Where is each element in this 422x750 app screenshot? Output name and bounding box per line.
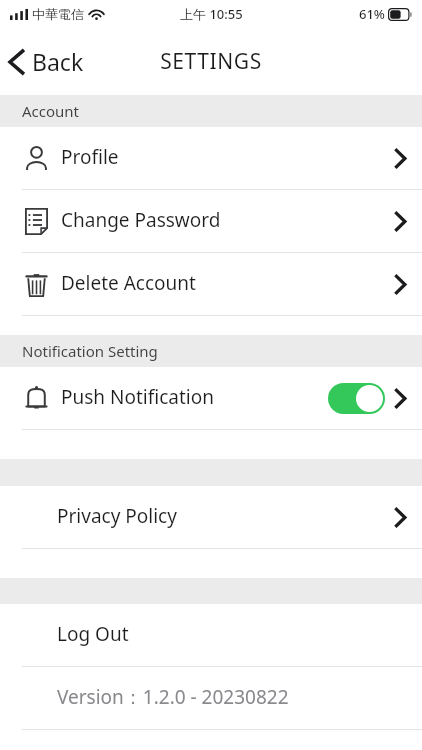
button[interactable]: Change Password xyxy=(0,190,422,252)
staticText: Log Out xyxy=(57,621,129,647)
staticText: Delete Account xyxy=(61,270,196,296)
staticText: Privacy Policy xyxy=(57,503,177,529)
button[interactable]: Back xyxy=(0,40,94,83)
staticText: 上午 10:55 xyxy=(180,5,243,23)
button[interactable]: Delete Account xyxy=(0,253,422,315)
staticText: SETTINGS xyxy=(160,47,262,76)
staticText: Notification Setting xyxy=(22,341,158,361)
staticText: Account xyxy=(22,101,80,121)
staticText: Push Notification xyxy=(61,384,214,410)
button[interactable]: Profile xyxy=(0,127,422,189)
staticText: Change Password xyxy=(61,207,221,233)
staticText: Profile xyxy=(61,144,119,170)
button[interactable]: Privacy Policy xyxy=(0,486,422,548)
staticText: Back xyxy=(32,46,84,77)
button[interactable]: Version：1.2.0 - 20230822 xyxy=(0,667,422,729)
button[interactable]: Log Out xyxy=(0,604,422,666)
button[interactable]: Push Notification toggle, on xyxy=(328,383,385,414)
staticText: 61% xyxy=(359,5,385,23)
staticText: 中華電信 xyxy=(32,6,84,22)
button[interactable]: Push Notification xyxy=(0,367,422,429)
staticText: Version：1.2.0 - 20230822 xyxy=(57,684,289,710)
